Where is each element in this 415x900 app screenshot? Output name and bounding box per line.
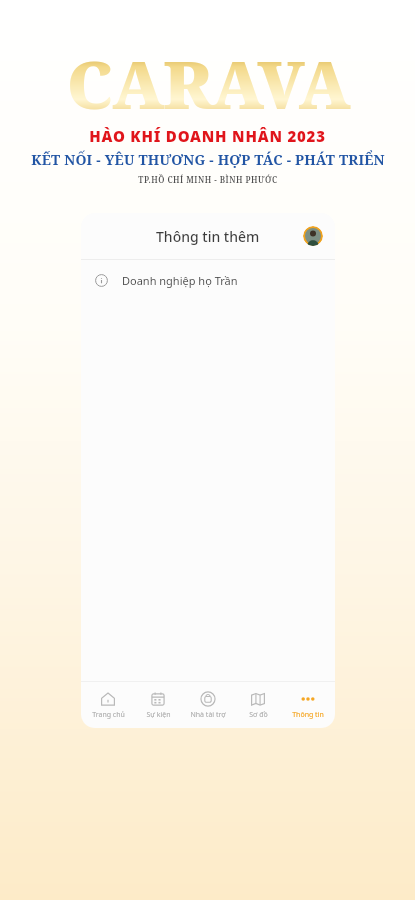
staticText: Thông tin bbox=[292, 710, 324, 720]
staticText: TP.HỒ CHÍ MINH - BÌNH PHƯỚC bbox=[138, 174, 278, 185]
button[interactable]: Sơ đồ bbox=[235, 689, 281, 722]
button[interactable]: Thông tin bbox=[285, 689, 331, 722]
staticText: Trang chủ bbox=[92, 710, 125, 720]
button[interactable]: Tài khoản bbox=[303, 226, 323, 246]
staticText: CARAVAN bbox=[58, 38, 358, 120]
staticText: Sơ đồ bbox=[249, 710, 268, 720]
button[interactable]: Nhà tài trợ bbox=[185, 689, 231, 722]
staticText: Sự kiện bbox=[146, 710, 171, 720]
button[interactable]: Doanh nghiệp họ Trần bbox=[81, 260, 335, 300]
staticText: Thông tin thêm bbox=[156, 227, 260, 246]
button[interactable]: Sự kiện bbox=[135, 689, 181, 722]
staticText: HÀO KHÍ DOANH NHÂN 2023 bbox=[89, 126, 326, 146]
staticText: Doanh nghiệp họ Trần bbox=[122, 273, 238, 288]
staticText: Nhà tài trợ bbox=[190, 710, 226, 720]
button[interactable]: Trang chủ bbox=[85, 689, 131, 722]
staticText: KẾT NỐI - YÊU THƯƠNG - HỢP TÁC - PHÁT TR… bbox=[31, 150, 385, 169]
